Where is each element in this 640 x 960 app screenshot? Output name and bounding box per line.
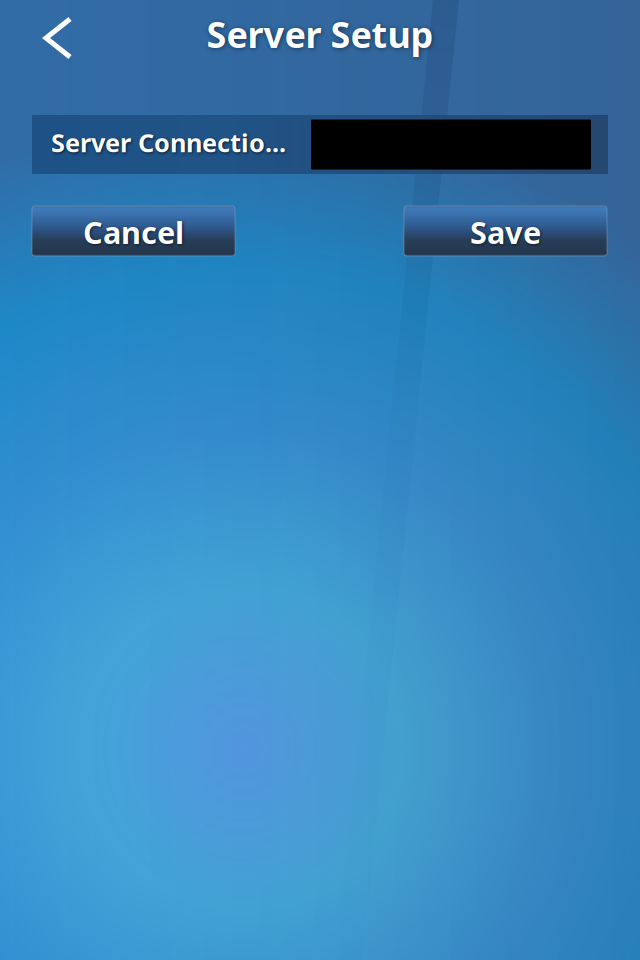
staticText: Server Setup xyxy=(206,10,433,58)
staticText: Save xyxy=(470,212,541,252)
button[interactable]: Save xyxy=(404,206,607,256)
staticText: Cancel xyxy=(83,212,184,252)
button[interactable]: Cancel xyxy=(32,206,235,256)
button[interactable]: Back xyxy=(26,5,90,71)
staticText: Server Connectio... xyxy=(51,126,286,159)
